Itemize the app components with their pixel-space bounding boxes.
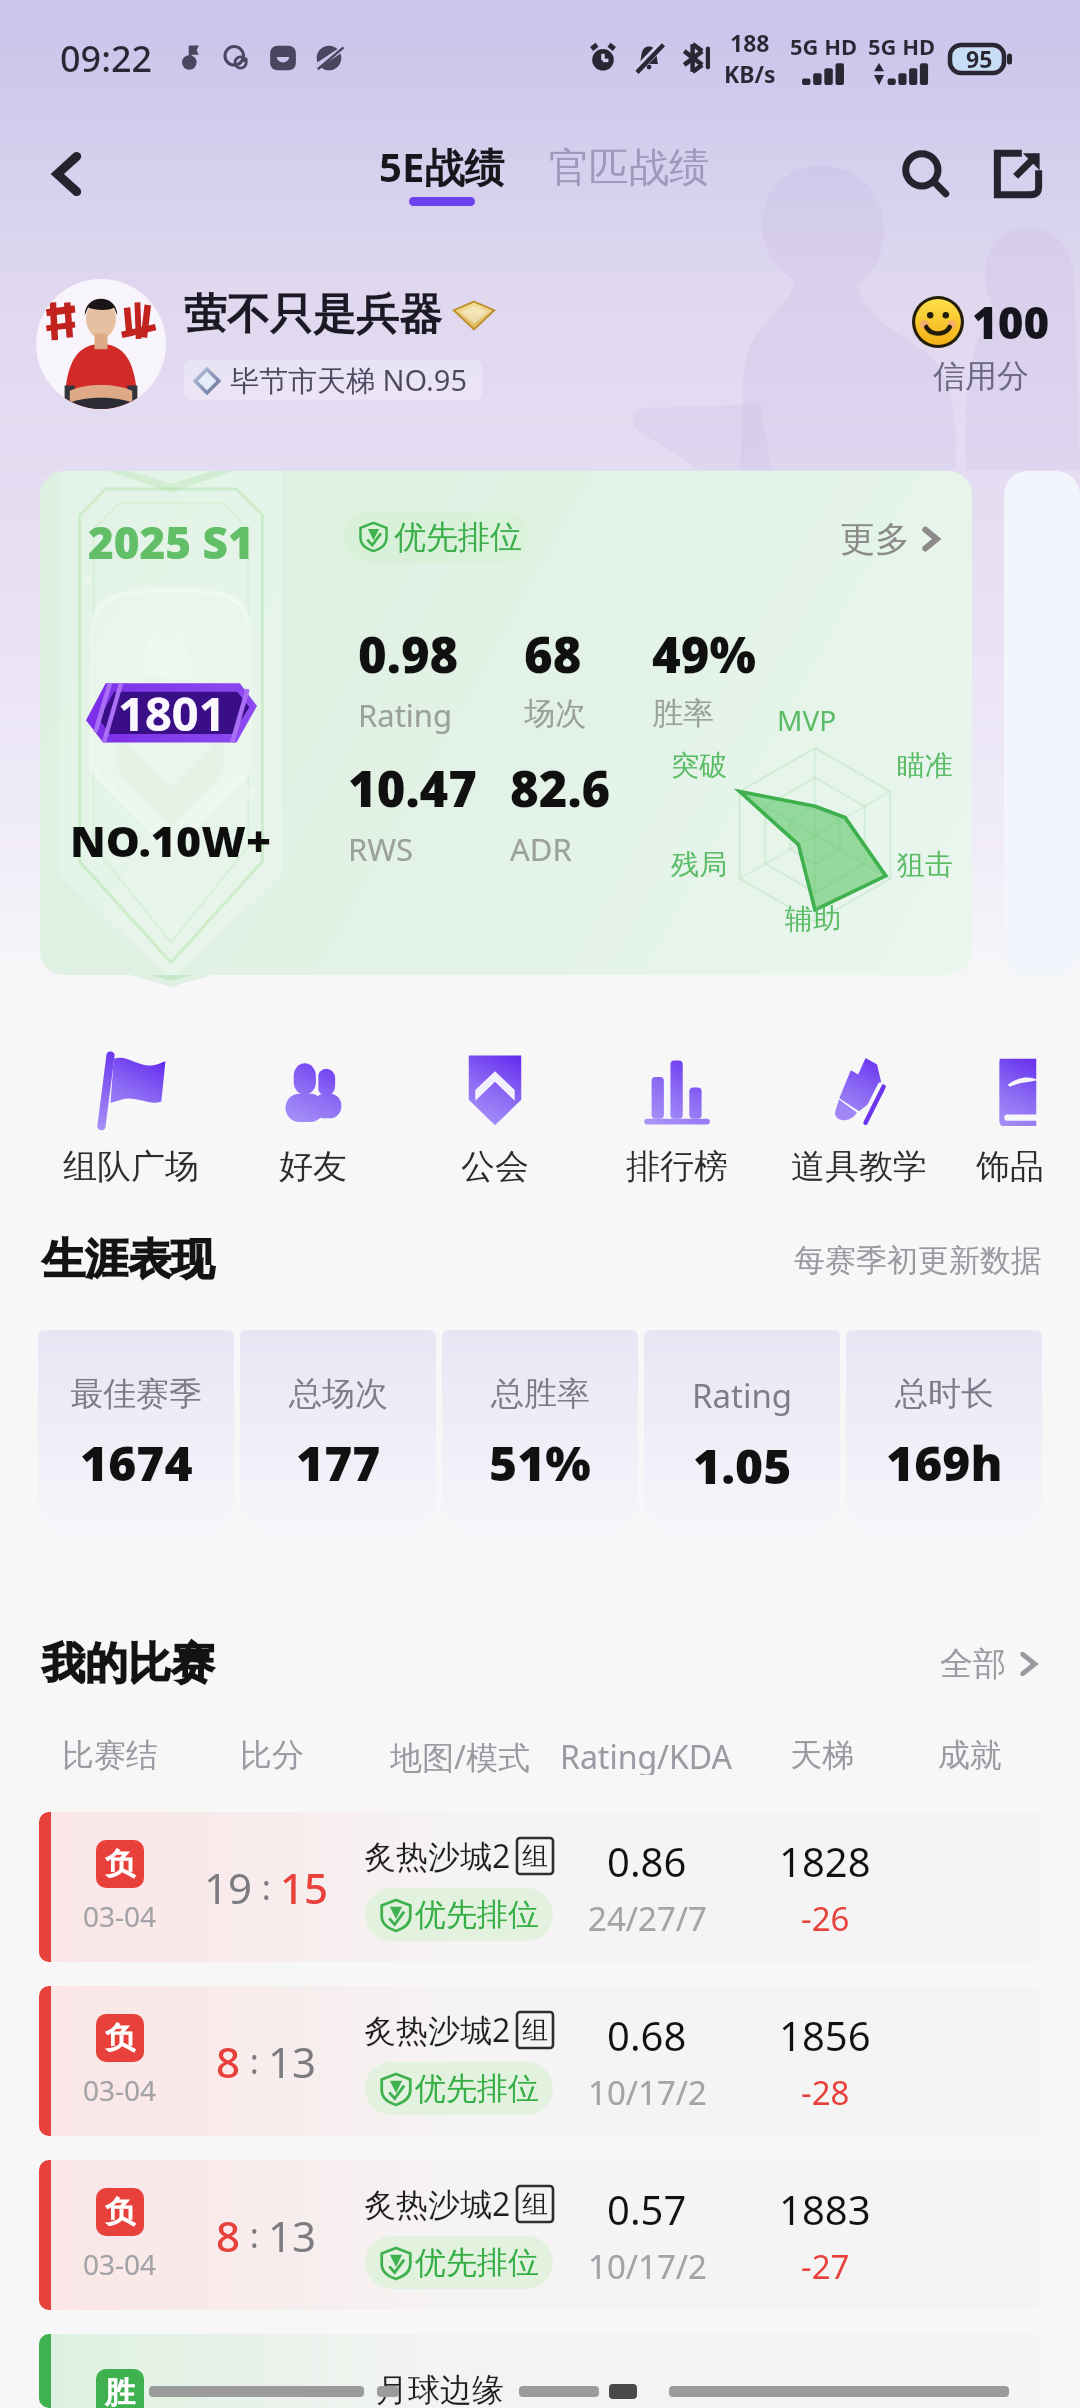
staticText: RWS	[348, 828, 414, 870]
staticText: 残局	[671, 847, 727, 882]
staticText: 优先排位	[394, 517, 522, 557]
staticText: 组	[522, 1840, 548, 1873]
button[interactable]: Rating	[644, 1330, 840, 1539]
button[interactable]: 2025 S1	[40, 471, 972, 975]
staticText: 2025 S1	[88, 512, 254, 572]
staticText: 1828	[779, 1834, 871, 1888]
button[interactable]: 更多	[836, 513, 948, 565]
button[interactable]: 道具教学	[768, 1049, 950, 1188]
button[interactable]: 总胜率	[442, 1330, 638, 1539]
staticText: MVP	[777, 701, 837, 739]
staticText: 10.47	[348, 755, 478, 822]
staticText: 0.86	[607, 1834, 687, 1888]
staticText: 总胜率	[491, 1373, 590, 1415]
button[interactable]: 组队广场	[40, 1049, 222, 1188]
staticText: 总时长	[895, 1373, 994, 1415]
staticText: 169h	[886, 1430, 1003, 1495]
button[interactable]: 饰品	[950, 1049, 1070, 1188]
button[interactable]: 毕节市天梯 NO.95	[186, 360, 468, 400]
button[interactable]: 排行榜	[586, 1049, 768, 1188]
staticText: 03-04	[83, 2245, 157, 2283]
staticText: 生涯表现	[42, 1233, 214, 1287]
staticText: 24/27/7	[588, 1896, 707, 1941]
staticText: 信用分	[933, 356, 1029, 396]
button[interactable]: 100	[908, 292, 1054, 396]
staticText: :	[241, 2212, 268, 2258]
button[interactable]: Avatar	[36, 279, 166, 409]
staticText: 1856	[779, 2008, 871, 2062]
button[interactable]: 官匹战绩	[543, 138, 715, 208]
staticText: 狙击	[897, 847, 953, 882]
staticText: 我的比赛	[42, 1637, 214, 1691]
staticText: 总场次	[289, 1373, 388, 1415]
staticText: 组	[522, 2014, 548, 2047]
staticText: 成就	[938, 1735, 1002, 1775]
staticText: 胜	[105, 2374, 135, 2408]
staticText: 瞄准	[897, 748, 953, 783]
staticText: 8	[216, 2033, 241, 2090]
staticText: 1.05	[693, 1433, 792, 1498]
staticText: 09:22	[60, 34, 153, 83]
staticText: 8	[216, 2207, 241, 2264]
staticText: 更多	[840, 517, 910, 561]
button[interactable]: 负	[39, 2160, 1041, 2310]
button[interactable]: Share	[978, 134, 1058, 214]
staticText: 13	[268, 2207, 317, 2264]
staticText: 官匹战绩	[549, 142, 709, 192]
staticText: 5G HD	[868, 31, 936, 61]
button[interactable]: 总场次	[240, 1330, 436, 1539]
button[interactable]: 胜	[39, 2334, 1041, 2408]
staticText: 组	[522, 2188, 548, 2221]
staticText: 49%	[652, 621, 756, 688]
button[interactable]: 优先排位	[358, 511, 529, 562]
staticText: KB/s	[724, 58, 776, 89]
staticText: 每赛季初更新数据	[794, 1241, 1042, 1280]
staticText: 0.98	[358, 621, 459, 688]
button[interactable]: 公会	[404, 1049, 586, 1188]
staticText: 天梯	[790, 1735, 854, 1775]
staticText: 5E战绩	[379, 139, 505, 194]
button[interactable]: Search	[886, 134, 966, 214]
staticText: NO.10W+	[70, 811, 272, 870]
staticText: -26	[801, 1896, 850, 1941]
staticText: 51%	[489, 1430, 591, 1495]
staticText: 177	[296, 1430, 381, 1495]
staticText: 月球边缘	[376, 2370, 504, 2408]
staticText: 排行榜	[626, 1145, 728, 1188]
button[interactable]: 5E战绩	[373, 135, 511, 210]
staticText: 0.68	[607, 2008, 687, 2062]
button[interactable]: 负	[39, 1812, 1041, 1962]
staticText: Rating	[358, 694, 453, 736]
staticText: :	[241, 2038, 268, 2084]
staticText: 15	[280, 1859, 329, 1916]
staticText: 地图/模式	[390, 1735, 530, 1775]
staticText: Rating	[692, 1373, 793, 1418]
staticText: 19	[204, 1859, 253, 1916]
staticText: 68	[524, 621, 582, 688]
staticText: 道具教学	[791, 1145, 927, 1188]
button[interactable]: 负	[39, 1986, 1041, 2136]
staticText: 1801	[118, 681, 226, 745]
staticText: 1883	[779, 2182, 871, 2236]
staticText: 5G HD	[790, 31, 858, 61]
staticText: ADR	[510, 828, 572, 870]
staticText: 胜率	[652, 694, 714, 733]
staticText: :	[253, 1864, 280, 1910]
button[interactable]: Back	[28, 135, 106, 213]
button[interactable]: 最佳赛季	[38, 1330, 234, 1539]
staticText: 0.57	[607, 2182, 687, 2236]
staticText: 辅助	[785, 901, 841, 936]
staticText: 饰品	[976, 1145, 1044, 1188]
staticText: 好友	[279, 1145, 347, 1188]
staticText: 03-04	[83, 1897, 157, 1935]
button[interactable]: 好友	[222, 1049, 404, 1188]
button[interactable]: 全部	[936, 1639, 1046, 1689]
staticText: 优先排位	[415, 2069, 539, 2108]
staticText: 比分	[240, 1735, 304, 1775]
staticText: 公会	[461, 1145, 529, 1188]
staticText: 10/17/2	[588, 2070, 707, 2115]
staticText: 82.6	[510, 755, 611, 822]
staticText: 95	[966, 43, 993, 74]
button[interactable]: 总时长	[846, 1330, 1042, 1539]
staticText: 炙热沙城2	[364, 2182, 511, 2226]
